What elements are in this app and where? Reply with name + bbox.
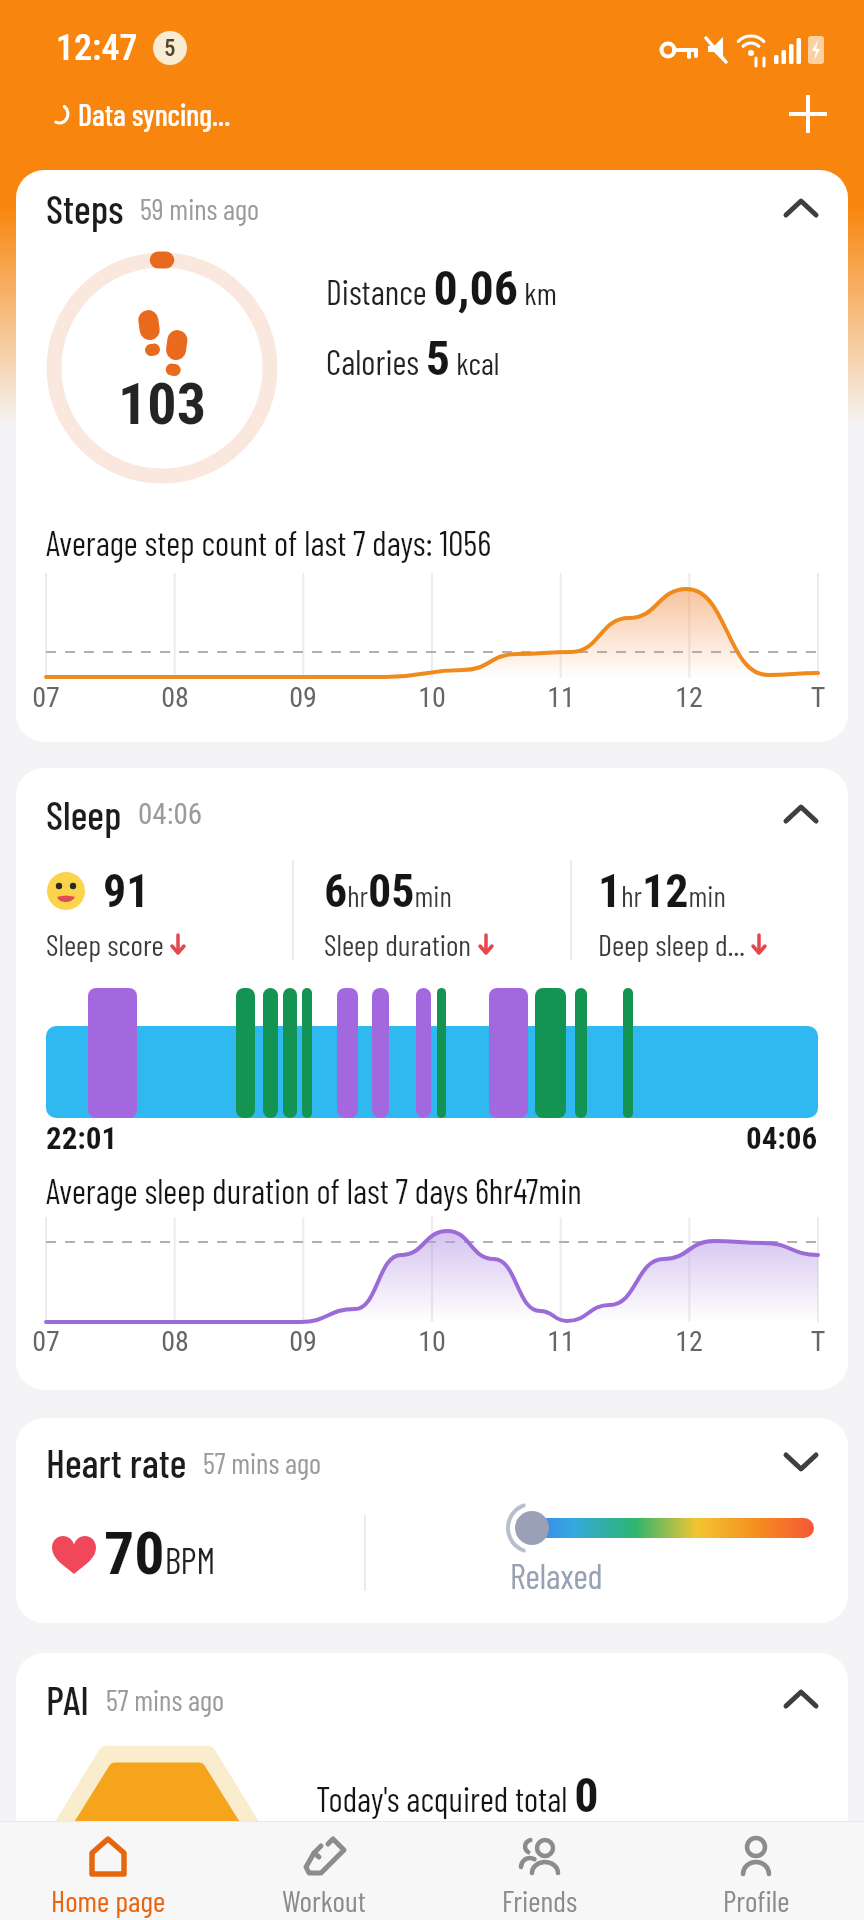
staticText: 5 [164, 35, 176, 62]
button[interactable]: Home page [0, 1822, 216, 1918]
button[interactable]: Friends [432, 1822, 648, 1918]
button[interactable]: Profile [648, 1822, 864, 1918]
button[interactable] [784, 198, 818, 218]
staticText: 10 [402, 681, 462, 714]
staticText: 09 [273, 1325, 333, 1358]
button[interactable]: PAI [16, 1653, 848, 1919]
staticText: 07 [16, 1325, 76, 1358]
staticText: Sleep score [46, 926, 164, 962]
button[interactable] [784, 1689, 818, 1709]
staticText: Calories 5 kcal [326, 330, 500, 386]
staticText: Sleep [46, 790, 122, 838]
staticText: 22:01 [46, 1120, 118, 1156]
staticText: Today's acquired total 0 [316, 1767, 599, 1823]
button[interactable]: Sleep [16, 768, 848, 1390]
staticText: 57 mins ago [203, 1445, 322, 1480]
button[interactable]: Data syncing... [48, 96, 231, 132]
button[interactable] [784, 1452, 818, 1472]
staticText: 07 [16, 681, 76, 714]
button[interactable]: Workout [216, 1822, 432, 1918]
staticText: Relaxed [510, 1554, 603, 1596]
staticText: 09 [273, 681, 333, 714]
staticText: Profile [723, 1882, 790, 1918]
staticText: 70BPM [104, 1518, 216, 1588]
staticText: 08 [145, 1325, 205, 1358]
staticText: Average sleep duration of last 7 days 6h… [46, 1170, 582, 1211]
button[interactable] [780, 86, 836, 142]
staticText: 12:47 [56, 27, 138, 69]
staticText: 12 [659, 1325, 719, 1358]
staticText: Sleep duration [324, 926, 472, 962]
staticText: 08 [145, 681, 205, 714]
staticText: 04:06 [138, 797, 203, 831]
staticText: Deep sleep d... [598, 926, 745, 962]
staticText: 6hr05min [324, 864, 452, 918]
staticText: Heart rate [46, 1438, 187, 1486]
staticText: PAI [46, 1675, 90, 1723]
staticText: Steps [46, 184, 124, 232]
staticText: Average step count of last 7 days: 1056 [46, 522, 492, 563]
staticText: Distance 0,06 km [326, 260, 557, 316]
staticText: 11 [531, 1325, 591, 1358]
staticText: 1hr12min [598, 864, 726, 918]
staticText: T [788, 1325, 848, 1358]
staticText: 10 [402, 1325, 462, 1358]
button[interactable]: Heart rate [16, 1418, 848, 1623]
staticText: 59 mins ago [140, 191, 260, 226]
staticText: T [788, 681, 848, 714]
staticText: Home page [51, 1882, 166, 1918]
staticText: 91 [103, 864, 150, 918]
staticText: Friends [502, 1882, 578, 1918]
staticText: Data syncing... [78, 96, 231, 132]
staticText: 12 [659, 681, 719, 714]
staticText: Workout [282, 1882, 366, 1918]
button[interactable]: Steps [16, 170, 848, 742]
staticText: 04:06 [746, 1120, 818, 1156]
staticText: 11 [531, 681, 591, 714]
staticText: 57 mins ago [106, 1682, 225, 1717]
button[interactable] [784, 804, 818, 824]
staticText: 103 [118, 370, 207, 438]
